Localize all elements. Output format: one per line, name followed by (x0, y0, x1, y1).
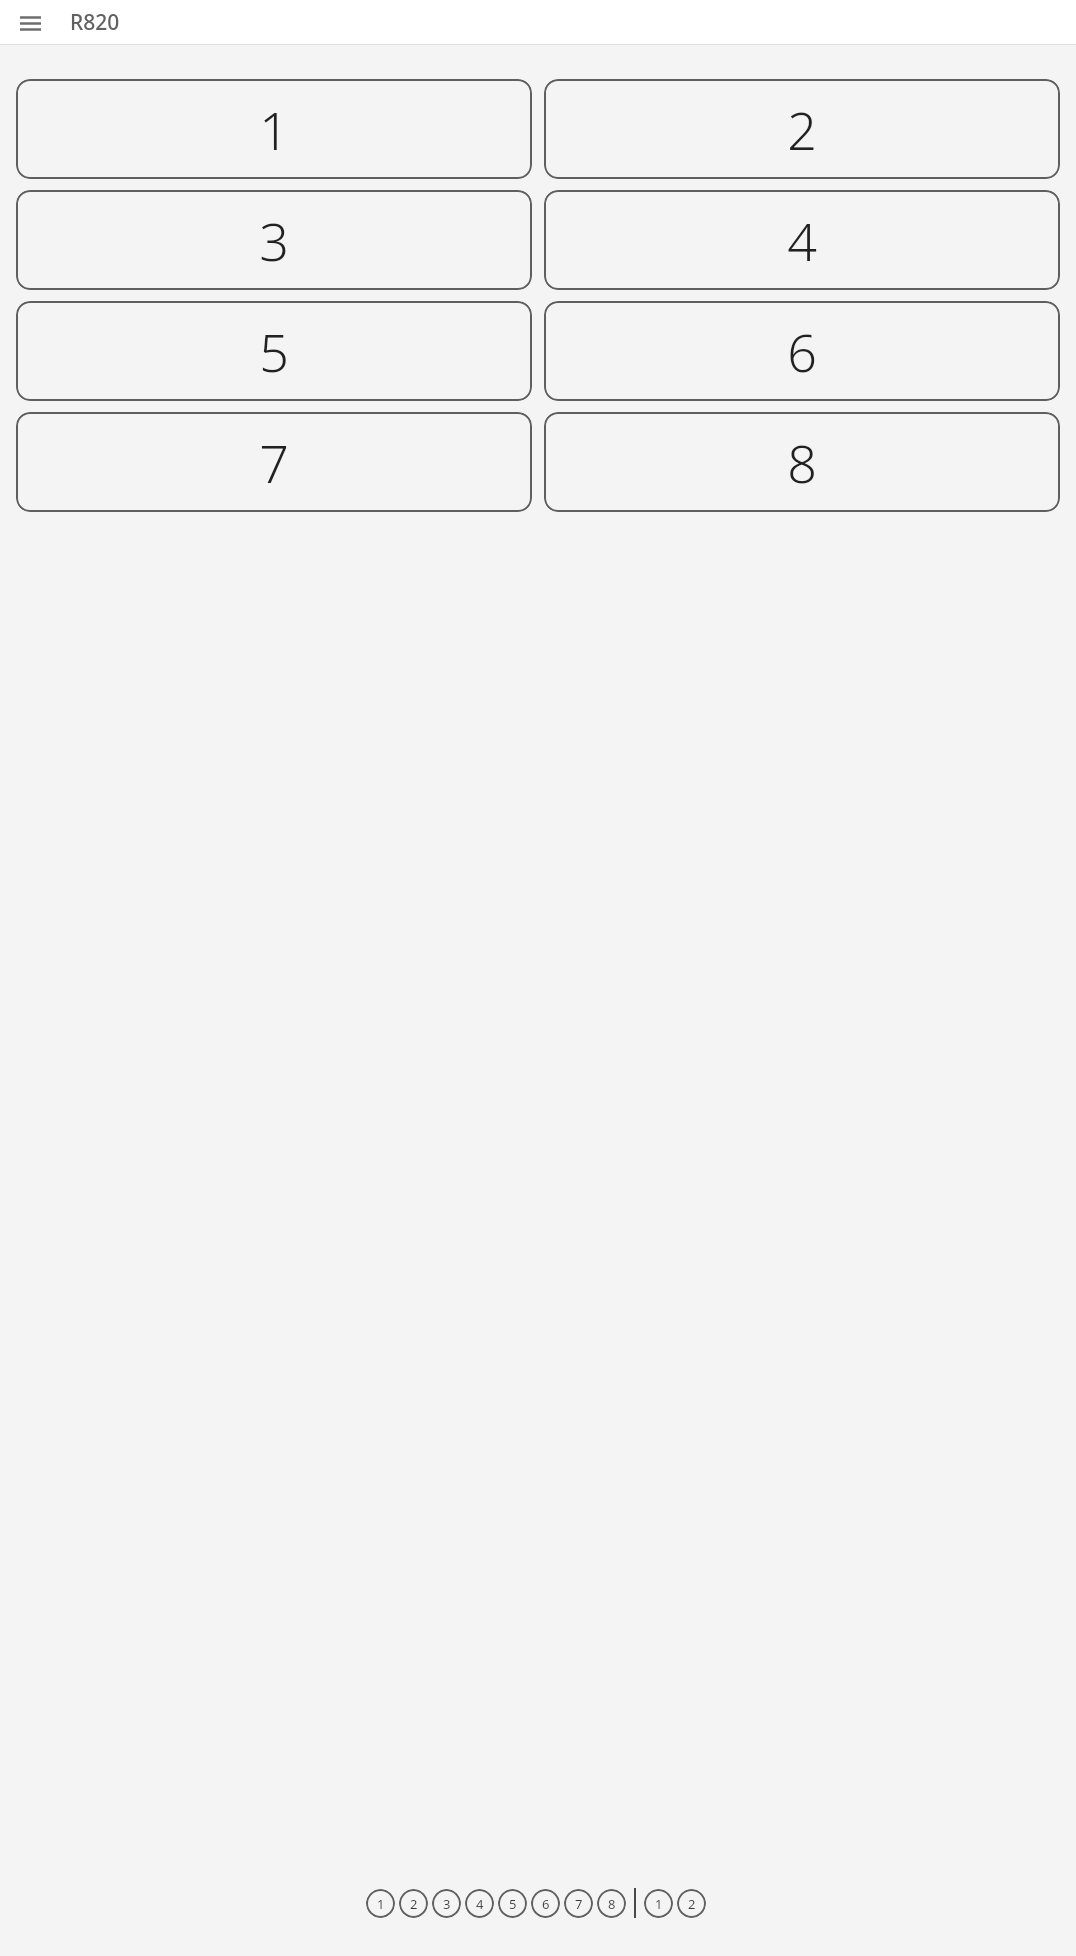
button[interactable]: 3 (16, 190, 532, 290)
button[interactable]: 8 (544, 412, 1060, 512)
button[interactable]: 3 (432, 1889, 461, 1918)
button[interactable]: Open navigation menu (9, 2, 51, 44)
button[interactable]: 2 (677, 1889, 706, 1918)
staticText: 4 (787, 205, 817, 276)
button[interactable]: 7 (16, 412, 532, 512)
staticText: 3 (259, 205, 289, 276)
staticText: 3 (443, 1895, 451, 1913)
staticText: 5 (259, 316, 289, 387)
button[interactable]: 4 (465, 1889, 494, 1918)
button[interactable]: 6 (544, 301, 1060, 401)
button[interactable]: 2 (399, 1889, 428, 1918)
button[interactable]: 1 (16, 79, 532, 179)
staticText: 6 (542, 1895, 550, 1913)
staticText: 8 (787, 427, 817, 498)
staticText: 2 (410, 1895, 418, 1913)
button[interactable]: 1 (366, 1889, 395, 1918)
staticText: 1 (655, 1895, 663, 1913)
staticText: R820 (70, 8, 120, 37)
staticText: 6 (787, 316, 817, 387)
button[interactable]: 2 (544, 79, 1060, 179)
staticText: 4 (476, 1895, 484, 1913)
button[interactable]: 6 (531, 1889, 560, 1918)
staticText: 7 (259, 427, 289, 498)
button[interactable]: 1 (644, 1889, 673, 1918)
staticText: 7 (575, 1895, 583, 1913)
button[interactable]: 5 (498, 1889, 527, 1918)
button[interactable]: 4 (544, 190, 1060, 290)
button[interactable]: 8 (597, 1889, 626, 1918)
staticText: 2 (688, 1895, 696, 1913)
button[interactable]: 5 (16, 301, 532, 401)
button[interactable]: 7 (564, 1889, 593, 1918)
staticText: 5 (509, 1895, 517, 1913)
staticText: 1 (259, 94, 289, 165)
staticText: 2 (787, 94, 817, 165)
staticText: 1 (377, 1895, 385, 1913)
staticText: 8 (608, 1895, 616, 1913)
